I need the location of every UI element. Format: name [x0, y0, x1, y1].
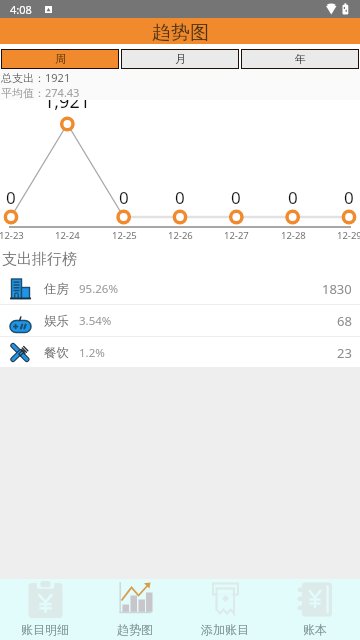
staticText: 12-27: [224, 229, 249, 241]
staticText: 趋势图: [117, 622, 153, 637]
staticText: 1830: [322, 280, 352, 298]
staticText: 12-29: [337, 229, 360, 241]
staticText: 0: [6, 186, 16, 209]
staticText: 0: [231, 186, 241, 209]
staticText: 23: [337, 344, 352, 362]
button[interactable]: 餐饮: [0, 337, 360, 368]
staticText: 12-26: [168, 229, 193, 241]
button[interactable]: 趋势图: [90, 579, 180, 640]
button[interactable]: 周: [2, 50, 118, 68]
staticText: 3.54%: [79, 313, 112, 329]
staticText: 平均值：274.43: [1, 85, 80, 100]
button[interactable]: 年: [242, 50, 358, 68]
staticText: 1,921: [44, 100, 91, 114]
staticText: 0: [288, 186, 298, 209]
staticText: 12-24: [55, 229, 80, 241]
staticText: 95.26%: [79, 281, 118, 297]
staticText: 0: [119, 186, 129, 209]
staticText: 12-25: [112, 229, 137, 241]
staticText: 总支出：1921: [1, 70, 71, 85]
staticText: 餐饮: [44, 345, 69, 361]
staticText: 住房: [44, 281, 69, 297]
staticText: 趋势图: [152, 21, 209, 45]
button[interactable]: 账目明细: [0, 579, 90, 640]
staticText: 12-23: [0, 229, 24, 241]
button[interactable]: 娱乐: [0, 305, 360, 336]
staticText: 月: [175, 52, 186, 66]
staticText: 年: [295, 52, 306, 66]
staticText: 0: [175, 186, 185, 209]
button[interactable]: 住房: [0, 273, 360, 304]
staticText: 周: [55, 52, 66, 66]
staticText: 娱乐: [44, 313, 69, 329]
staticText: 1.2%: [79, 345, 105, 361]
button[interactable]: 账本: [270, 579, 360, 640]
staticText: 账目明细: [21, 622, 69, 637]
staticText: 0: [344, 186, 354, 209]
staticText: 68: [337, 312, 352, 330]
staticText: 添加账目: [201, 622, 249, 637]
button[interactable]: 添加账目: [180, 579, 270, 640]
staticText: 12-28: [281, 229, 306, 241]
staticText: 4:08: [10, 2, 32, 17]
staticText: 支出排行榜: [2, 250, 77, 269]
button[interactable]: 月: [122, 50, 238, 68]
staticText: 账本: [303, 622, 327, 637]
